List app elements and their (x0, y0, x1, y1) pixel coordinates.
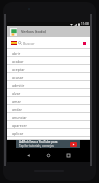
button[interactable]: anunciar (7, 113, 90, 121)
staticText: Buscar (23, 41, 35, 46)
button[interactable]: acabar (7, 57, 90, 65)
button[interactable]: Inicio (44, 151, 53, 160)
staticText: anunciar (12, 115, 27, 120)
staticText: admitir (12, 83, 25, 88)
staticText: aplicar (12, 131, 24, 136)
button[interactable]: admitir (7, 81, 90, 89)
button[interactable]: andar (7, 105, 90, 113)
staticText: andar (12, 107, 22, 112)
staticText: alzar (12, 91, 21, 96)
button[interactable]: abrir (7, 49, 90, 57)
staticText: acusar (12, 75, 24, 80)
staticText: amar (12, 99, 21, 104)
staticText: AdMob lleva a YouTube para (19, 140, 58, 144)
button[interactable]: AdMob lleva a YouTube para (16, 140, 80, 148)
button[interactable]: aplicar (7, 129, 90, 137)
button[interactable]: Recientes (64, 151, 73, 160)
button[interactable]: alzar (7, 89, 90, 97)
button[interactable]: aparecer (7, 121, 90, 129)
staticText: Verbos (todo) (21, 29, 46, 34)
staticText: apoyar (12, 137, 24, 140)
staticText: 11:08 (81, 22, 89, 26)
staticText: acabar (12, 59, 24, 64)
staticText: aceptar (12, 67, 25, 72)
button[interactable]: amar (7, 97, 90, 105)
button[interactable]: Idioma (10, 39, 17, 46)
button[interactable]: Reproducir (70, 142, 77, 147)
staticText: abrir (12, 51, 21, 56)
button[interactable]: Buscar (18, 37, 80, 49)
button[interactable]: Verbos (todo) (7, 26, 90, 37)
button[interactable]: Atras (24, 151, 33, 160)
staticText: Tap for tutorials, consejos (19, 144, 54, 148)
button[interactable]: acusar (7, 73, 90, 81)
button[interactable]: aceptar (7, 65, 90, 73)
staticText: aparecer (12, 123, 27, 128)
button[interactable]: apoyar (7, 137, 90, 140)
